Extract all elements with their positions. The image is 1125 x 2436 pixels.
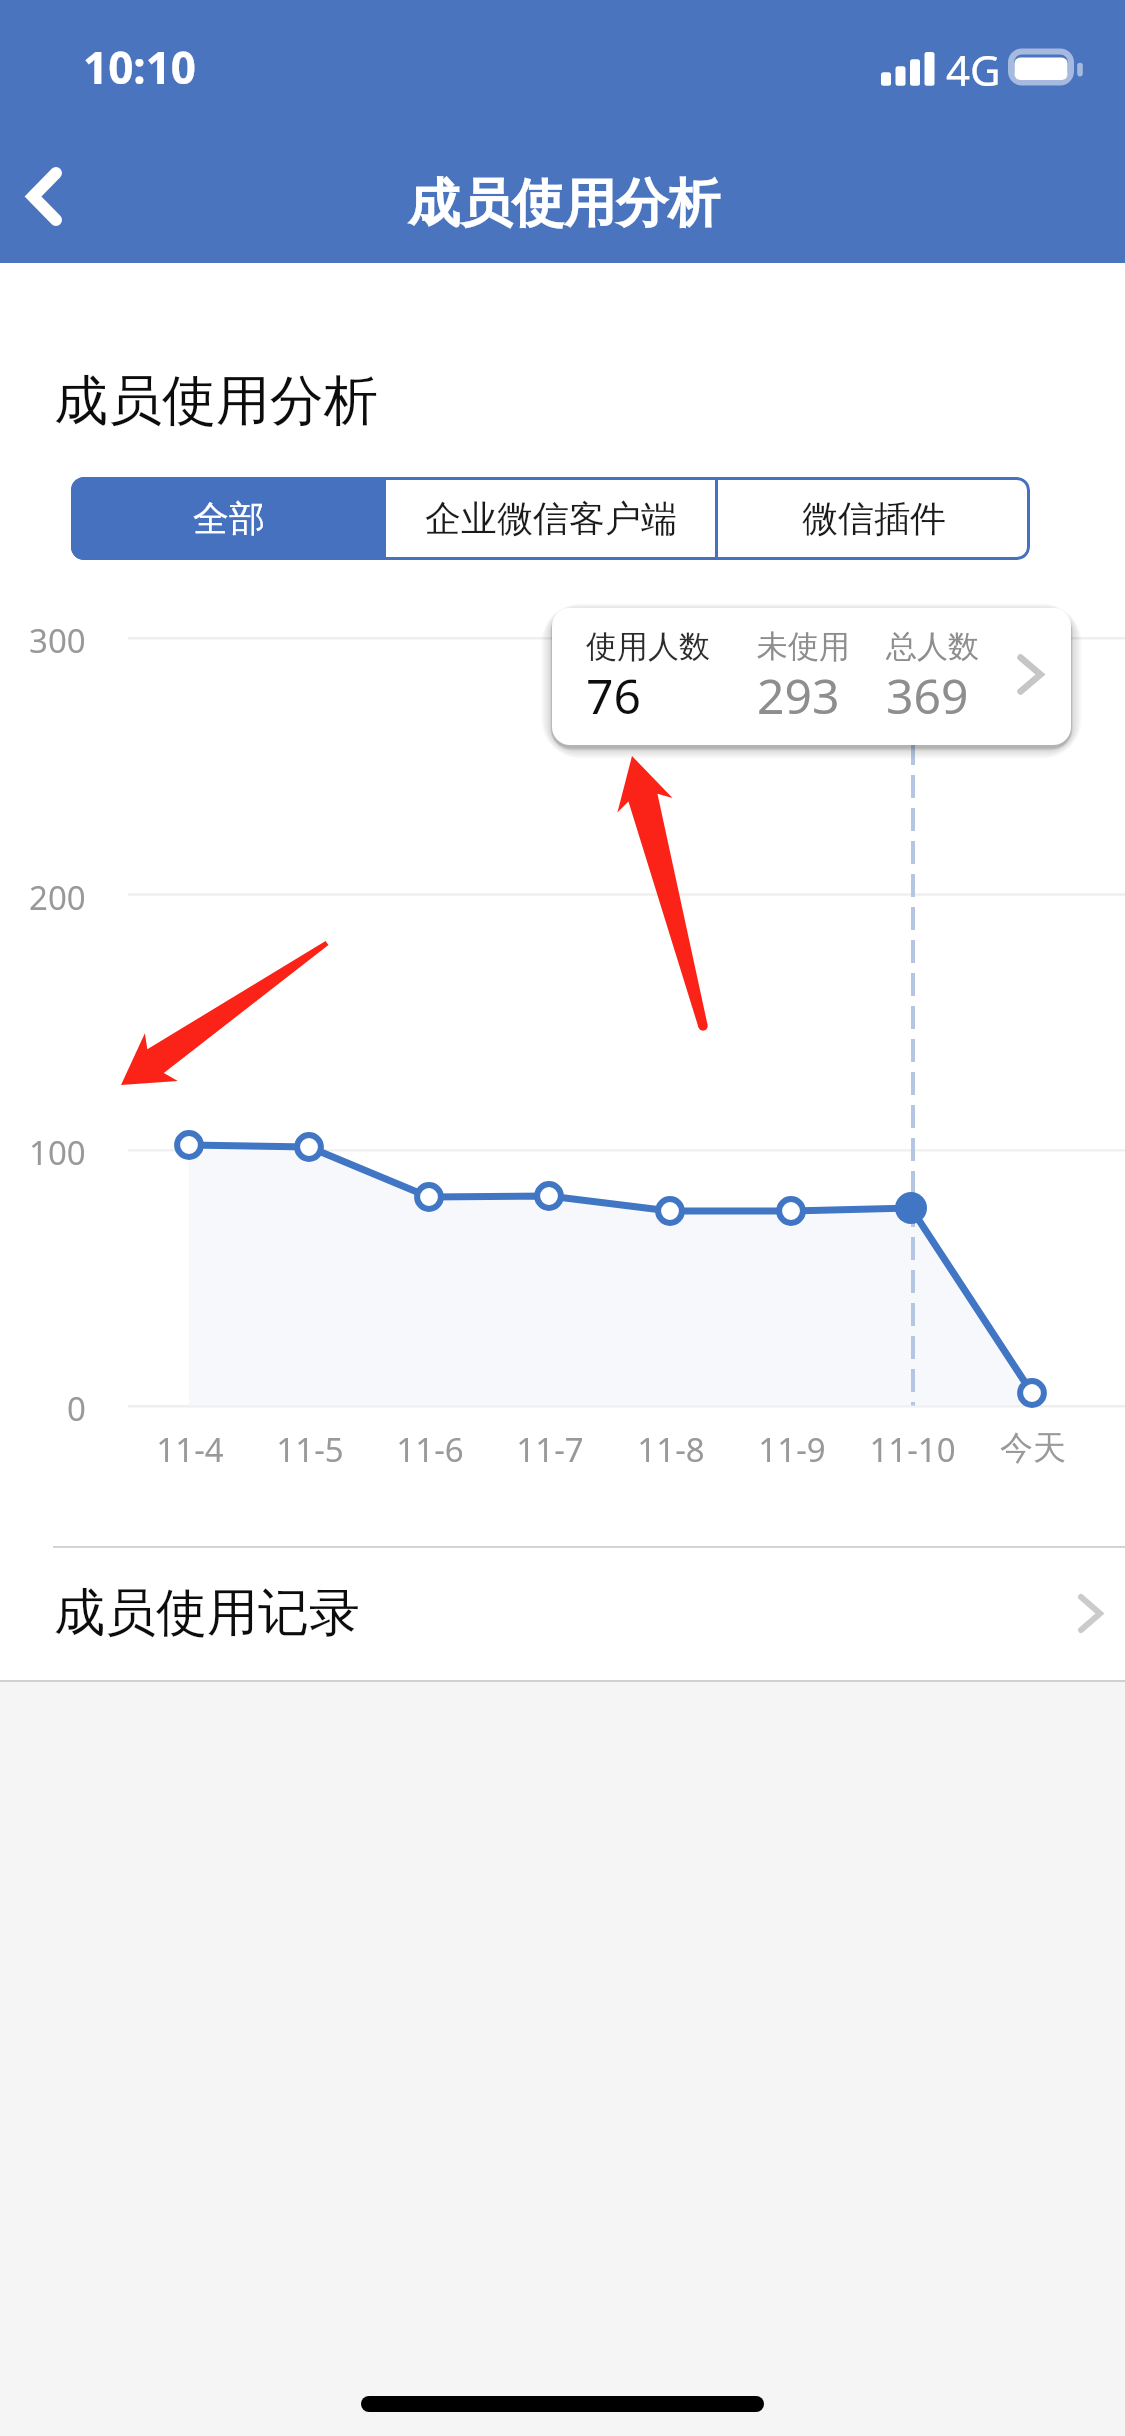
staticText: 76 [586, 663, 641, 728]
staticText: 11-7 [516, 1427, 584, 1472]
staticText: 企业微信客户端 [425, 496, 677, 541]
staticText: 293 [757, 663, 840, 728]
button[interactable]: 企业微信客户端 [386, 477, 715, 560]
staticText: 4G [946, 41, 1001, 98]
staticText: 未使用 [757, 627, 850, 666]
staticText: 成员使用分析 [408, 171, 720, 237]
staticText: 11-5 [276, 1427, 344, 1472]
staticText: 使用人数 [586, 627, 710, 666]
staticText: 成员使用记录 [54, 1581, 360, 1645]
button[interactable]: Back [0, 134, 89, 259]
staticText: 总人数 [886, 627, 979, 666]
staticText: 11-4 [156, 1427, 224, 1472]
button[interactable]: 成员使用记录 [0, 1548, 1125, 1678]
staticText: 成员使用分析 [54, 367, 378, 435]
button[interactable]: 微信插件 [718, 477, 1030, 560]
staticText: 0 [67, 1386, 86, 1431]
staticText: 11-10 [869, 1427, 956, 1472]
button[interactable]: 全部 [71, 477, 386, 560]
staticText: 11-9 [758, 1427, 826, 1472]
staticText: 369 [886, 663, 969, 728]
staticText: 今天 [1000, 1427, 1066, 1469]
staticText: 11-6 [396, 1427, 464, 1472]
staticText: 全部 [193, 496, 265, 541]
staticText: 200 [29, 875, 86, 920]
staticText: 100 [29, 1130, 86, 1175]
staticText: 11-8 [637, 1427, 705, 1472]
button[interactable]: 使用人数 [552, 608, 1071, 745]
staticText: 300 [29, 618, 86, 663]
staticText: 10:10 [83, 37, 197, 97]
staticText: 微信插件 [802, 496, 946, 541]
